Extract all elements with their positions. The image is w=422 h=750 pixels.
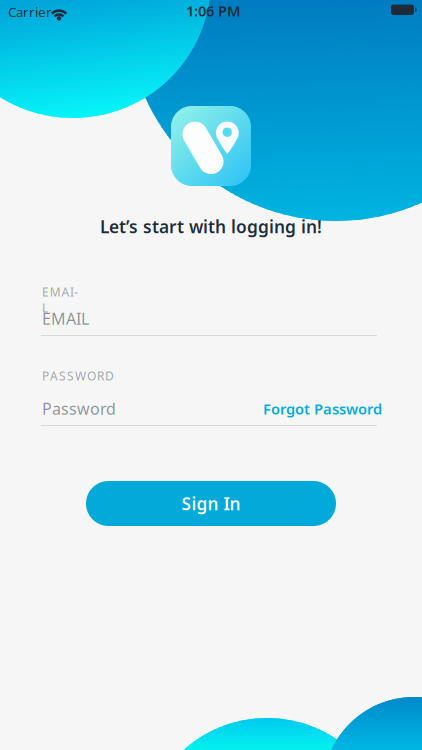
staticText: Carrier <box>8 3 52 21</box>
button[interactable]: Sign In <box>86 481 336 526</box>
staticText: PASSWORD <box>42 368 114 384</box>
staticText: Password <box>42 398 116 419</box>
staticText: Sign In <box>181 492 240 515</box>
staticText: Forgot Password <box>263 399 382 418</box>
staticText: Let’s start with logging in! <box>100 215 322 238</box>
staticText: EMAIL <box>42 284 81 300</box>
staticText: EMAIL <box>42 308 89 329</box>
staticText: 1:06 PM <box>186 1 241 20</box>
button[interactable]: Forgot Password <box>263 399 382 418</box>
